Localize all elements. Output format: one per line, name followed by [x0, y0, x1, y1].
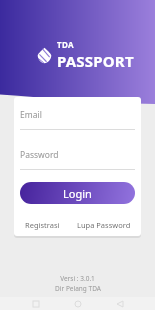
button[interactable]: Recent apps	[29, 297, 42, 310]
button[interactable]: Password	[14, 149, 141, 170]
staticText: Password	[20, 149, 59, 161]
button[interactable]: Lupa Password	[74, 218, 134, 232]
button[interactable]: Home	[71, 297, 84, 310]
staticText: PASSPORT	[57, 51, 134, 71]
button[interactable]: Back	[113, 297, 126, 310]
button[interactable]: Email	[14, 109, 141, 130]
staticText: Dir Pelang TDA	[55, 284, 101, 293]
staticText: Login	[63, 186, 92, 201]
staticText: Registrasi	[25, 220, 60, 230]
staticText: TDA	[57, 39, 75, 50]
staticText: Lupa Password	[77, 220, 131, 230]
staticText: Email	[20, 109, 42, 121]
staticText: Versi : 3.0.1	[60, 274, 95, 283]
button[interactable]: Registrasi	[22, 218, 63, 232]
button[interactable]: Login	[20, 182, 135, 204]
